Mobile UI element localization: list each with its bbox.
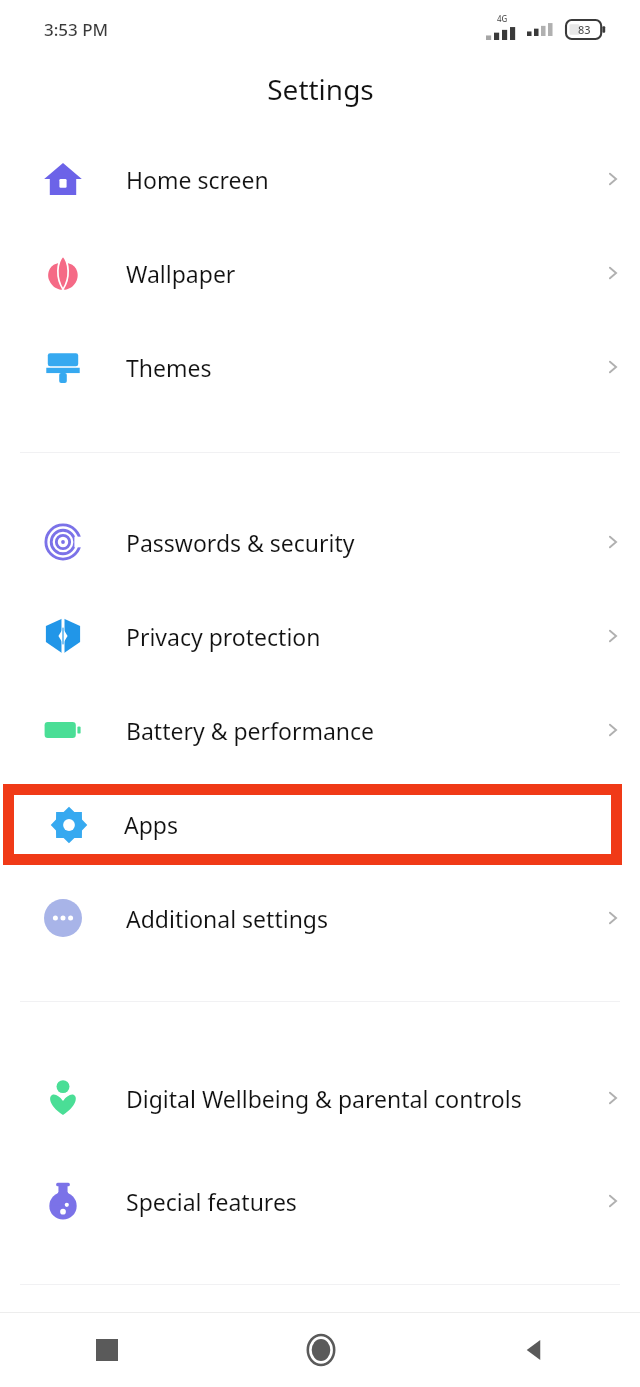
button[interactable]: Battery & performance — [0, 683, 640, 777]
other: Open — [602, 262, 624, 284]
button[interactable]: Additional settings — [0, 871, 640, 965]
other: Open — [602, 719, 624, 741]
button[interactable]: Apps — [14, 795, 611, 854]
staticText: Privacy protection — [126, 621, 530, 652]
button[interactable]: Themes — [0, 320, 640, 414]
other: Open — [602, 356, 624, 378]
other: Open — [602, 1190, 624, 1212]
staticText: 3:53 PM — [44, 18, 109, 41]
button[interactable]: Home screen — [0, 132, 640, 226]
button[interactable]: Special features — [0, 1154, 640, 1248]
staticText: Themes — [126, 352, 530, 383]
button[interactable]: Back — [427, 1313, 640, 1387]
button[interactable]: Home — [214, 1313, 427, 1387]
staticText: Apps — [124, 809, 179, 840]
other: Open — [602, 625, 624, 647]
button[interactable]: Passwords & security — [0, 495, 640, 589]
staticText: 83 — [578, 22, 591, 37]
staticText: Battery & performance — [126, 715, 530, 746]
staticText: 4G — [497, 13, 508, 24]
other: Open — [602, 907, 624, 929]
button[interactable]: Privacy protection — [0, 589, 640, 683]
other: Open — [602, 531, 624, 553]
staticText: Wallpaper — [126, 258, 530, 289]
other: Open — [602, 1087, 624, 1109]
staticText: Passwords & security — [126, 527, 530, 558]
button[interactable]: Wallpaper — [0, 226, 640, 320]
other: Open — [602, 168, 624, 190]
button[interactable]: Digital Wellbeing & parental controls — [0, 1042, 640, 1154]
staticText: Settings — [267, 70, 374, 108]
button[interactable]: Recents — [0, 1313, 214, 1387]
staticText: Home screen — [126, 164, 530, 195]
staticText: Special features — [126, 1186, 530, 1217]
staticText: Digital Wellbeing & parental controls — [126, 1083, 530, 1114]
staticText: Additional settings — [126, 903, 530, 934]
